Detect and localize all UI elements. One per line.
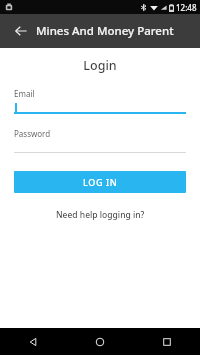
staticText: Email — [14, 88, 35, 99]
button[interactable]: Back — [0, 328, 66, 355]
button[interactable]: LOG IN — [14, 171, 186, 193]
staticText: Login — [0, 57, 200, 74]
staticText: Need help logging in? — [56, 209, 145, 221]
button[interactable]: Recent apps — [133, 328, 200, 355]
button[interactable]: Home — [66, 328, 133, 355]
button[interactable]: Navigate up — [8, 18, 34, 44]
staticText: 12:48 — [176, 2, 197, 13]
button[interactable]: Password — [14, 128, 186, 153]
button[interactable]: Need help logging in? — [50, 207, 151, 223]
staticText: Mines And Money Parent — [36, 23, 174, 39]
button[interactable]: Email — [14, 88, 186, 114]
staticText: Password — [14, 128, 51, 139]
staticText: LOG IN — [83, 176, 118, 188]
